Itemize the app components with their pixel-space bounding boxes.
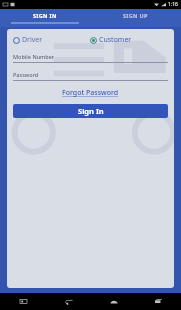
- staticText: Forgot Password: [62, 88, 119, 98]
- staticText: SIGN UP: [123, 12, 148, 19]
- button[interactable]: Customer: [90, 34, 168, 46]
- button[interactable]: Recent apps: [136, 293, 181, 310]
- staticText: Mobile Number: [13, 53, 55, 60]
- staticText: Customer: [99, 35, 132, 45]
- button[interactable]: SIGN IN: [0, 9, 90, 22]
- staticText: Sign In: [78, 106, 104, 116]
- staticText: Driver: [22, 35, 43, 45]
- button[interactable]: Home: [91, 293, 136, 310]
- button[interactable]: Sign In: [13, 104, 168, 118]
- button[interactable]: Keyboard: [0, 293, 46, 310]
- button[interactable]: Forgot Password: [60, 86, 121, 100]
- staticText: SIGN IN: [33, 12, 57, 19]
- staticText: Password: [13, 71, 39, 78]
- button[interactable]: Mobile Number: [13, 53, 168, 63]
- button[interactable]: Password: [13, 71, 168, 81]
- staticText: 1:16: [168, 1, 178, 8]
- button[interactable]: Driver: [13, 34, 90, 46]
- button[interactable]: SIGN UP: [90, 9, 181, 22]
- button[interactable]: Back: [46, 293, 91, 310]
